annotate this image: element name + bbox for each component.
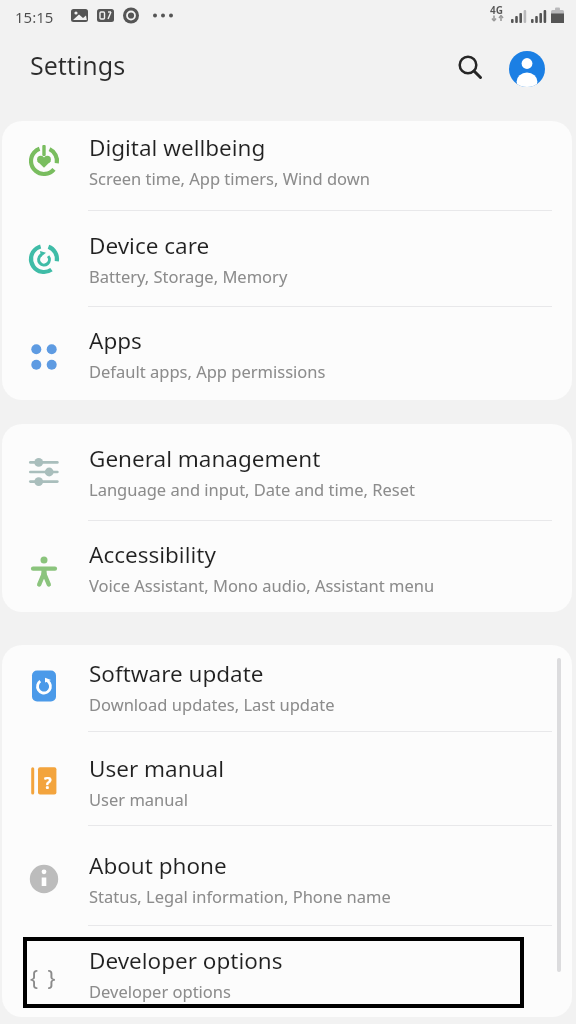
- staticText: Download updates, Last update: [89, 693, 335, 715]
- staticText: Language and input, Date and time, Reset: [89, 478, 415, 500]
- staticText: Screen time, App timers, Wind down: [89, 167, 370, 189]
- staticText: Apps: [89, 325, 142, 356]
- staticText: Voice Assistant, Mono audio, Assistant m…: [89, 574, 435, 596]
- staticText: Accessibility: [89, 539, 216, 570]
- button[interactable]: ?: [2, 732, 572, 825]
- button[interactable]: Digital wellbeing: [2, 121, 572, 210]
- button[interactable]: [449, 46, 491, 88]
- staticText: Developer options: [89, 980, 231, 1002]
- staticText: About phone: [89, 850, 227, 881]
- staticText: Device care: [89, 230, 210, 261]
- button[interactable]: Accessibility: [2, 521, 572, 612]
- button[interactable]: Apps: [2, 307, 572, 400]
- button[interactable]: Software update: [2, 645, 572, 731]
- button[interactable]: Device care: [2, 211, 572, 306]
- button[interactable]: About phone: [2, 826, 572, 925]
- staticText: User manual: [89, 788, 188, 810]
- staticText: Software update: [89, 658, 264, 689]
- button[interactable]: General management: [2, 424, 572, 520]
- staticText: 4G: [490, 3, 503, 17]
- staticText: Digital wellbeing: [89, 132, 266, 163]
- staticText: Battery, Storage, Memory: [89, 265, 288, 287]
- staticText: General management: [89, 443, 321, 474]
- button[interactable]: { }: [2, 926, 572, 1017]
- staticText: { }: [30, 964, 58, 993]
- staticText: Developer options: [89, 945, 283, 976]
- staticText: ?: [44, 772, 52, 794]
- staticText: User manual: [89, 753, 224, 784]
- staticText: Default apps, App permissions: [89, 360, 326, 382]
- staticText: Status, Legal information, Phone name: [89, 885, 391, 907]
- button[interactable]: [509, 51, 545, 87]
- staticText: 15:15: [15, 7, 54, 27]
- staticText: Settings: [30, 48, 126, 82]
